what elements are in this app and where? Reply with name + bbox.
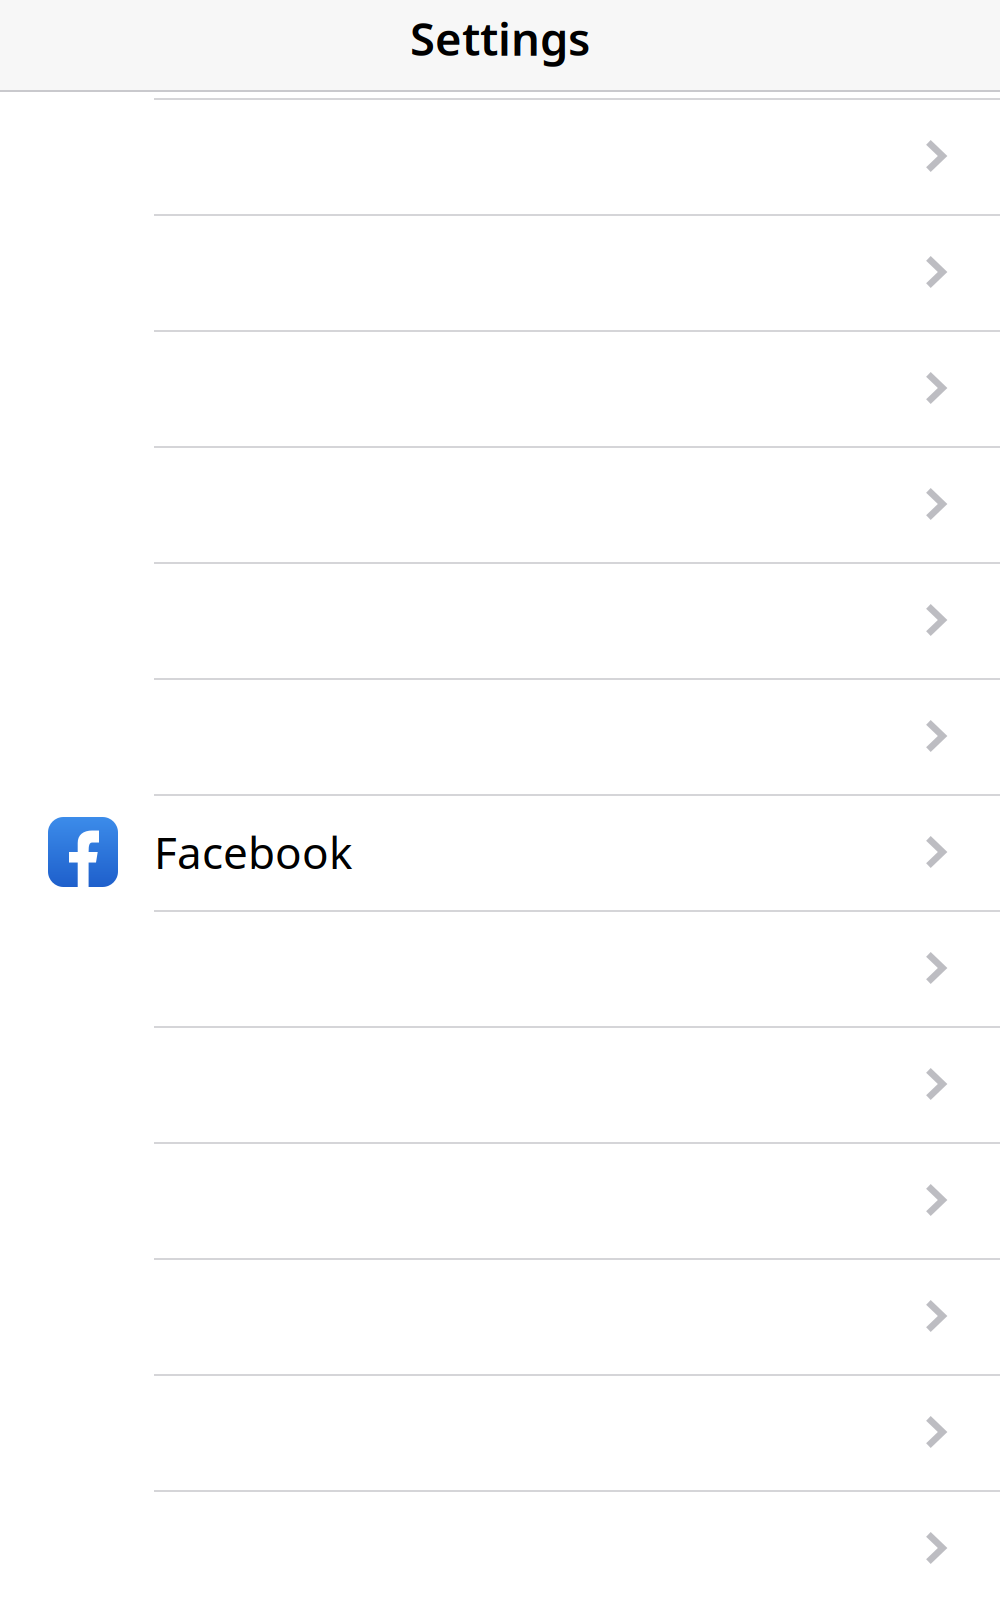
button[interactable]: Settings item: [0, 98, 1000, 214]
staticText: Settings: [410, 8, 590, 68]
button[interactable]: Settings item: [0, 562, 1000, 678]
button[interactable]: Settings item: [0, 446, 1000, 562]
button[interactable]: Settings item: [0, 910, 1000, 1026]
button[interactable]: Settings item: [0, 1142, 1000, 1258]
button[interactable]: Settings item: [0, 330, 1000, 446]
button[interactable]: Facebook: [0, 794, 1000, 910]
button[interactable]: Settings item: [0, 1026, 1000, 1142]
staticText: Facebook: [154, 823, 352, 881]
button[interactable]: Settings item: [0, 214, 1000, 330]
button[interactable]: Settings item: [0, 1490, 1000, 1601]
button[interactable]: Settings item: [0, 1258, 1000, 1374]
button[interactable]: Settings item: [0, 678, 1000, 794]
button[interactable]: Settings item: [0, 1374, 1000, 1490]
